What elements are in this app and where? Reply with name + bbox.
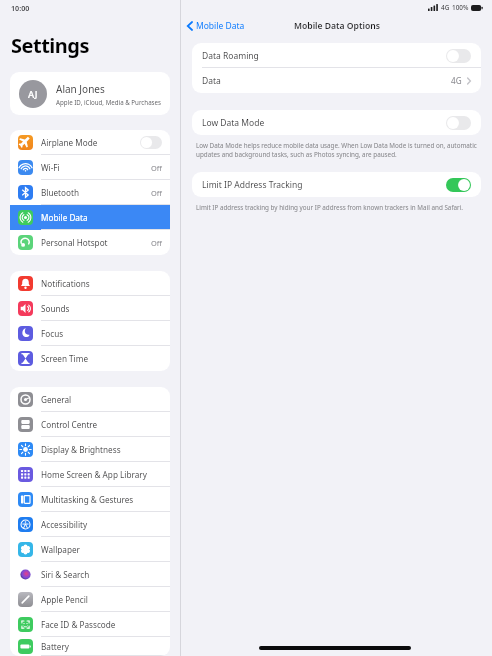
staticText: Personal Hotspot bbox=[41, 237, 151, 248]
button[interactable]: Home Screen & App Library bbox=[10, 462, 170, 487]
staticText: Limit IP address tracking by hiding your… bbox=[196, 203, 463, 212]
button[interactable]: Accessibility bbox=[10, 512, 170, 537]
staticText: Siri & Search bbox=[41, 569, 162, 580]
button[interactable]: Apple Pencil bbox=[10, 587, 170, 612]
staticText: Data Roaming bbox=[202, 50, 446, 62]
button[interactable]: Control Centre bbox=[10, 412, 170, 437]
staticText: AJ bbox=[28, 88, 38, 101]
staticText: 100% bbox=[452, 3, 469, 12]
button[interactable]: AJ bbox=[10, 72, 170, 115]
staticText: Alan Jones bbox=[56, 82, 105, 96]
staticText: Home Screen & App Library bbox=[41, 469, 162, 480]
button[interactable]: Bluetooth bbox=[10, 180, 170, 205]
button[interactable]: Toggle off bbox=[446, 116, 471, 130]
staticText: 4G bbox=[451, 75, 462, 86]
staticText: Low Data Mode helps reduce mobile data u… bbox=[196, 141, 477, 159]
button[interactable]: Limit IP Address Tracking bbox=[192, 172, 481, 197]
button[interactable]: Toggle on bbox=[446, 178, 471, 192]
staticText: Apple Pencil bbox=[41, 594, 162, 605]
button[interactable]: Wi-Fi bbox=[10, 155, 170, 180]
button[interactable]: Airplane Mode bbox=[10, 130, 170, 155]
staticText: 10:00 bbox=[11, 3, 30, 13]
button[interactable]: Screen Time bbox=[10, 346, 170, 371]
staticText: Off bbox=[151, 238, 162, 248]
button[interactable]: Toggle off bbox=[140, 136, 162, 149]
staticText: Focus bbox=[41, 328, 162, 339]
button[interactable]: Sounds bbox=[10, 296, 170, 321]
button[interactable]: General bbox=[10, 387, 170, 412]
staticText: Notifications bbox=[41, 278, 162, 289]
button[interactable]: Focus bbox=[10, 321, 170, 346]
staticText: Airplane Mode bbox=[41, 137, 140, 148]
staticText: Wallpaper bbox=[41, 544, 162, 555]
staticText: Screen Time bbox=[41, 353, 162, 364]
staticText: Limit IP Address Tracking bbox=[202, 179, 446, 191]
staticText: Apple ID, iCloud, Media & Purchases bbox=[56, 98, 162, 106]
staticText: Accessibility bbox=[41, 519, 162, 530]
button[interactable]: Notifications bbox=[10, 271, 170, 296]
staticText: Bluetooth bbox=[41, 187, 151, 198]
button[interactable]: Battery bbox=[10, 637, 170, 656]
staticText: Off bbox=[151, 188, 162, 198]
staticText: Low Data Mode bbox=[202, 117, 446, 129]
button[interactable]: Low Data Mode bbox=[192, 110, 481, 135]
button[interactable]: Mobile Data bbox=[181, 17, 251, 35]
staticText: Display & Brightness bbox=[41, 444, 162, 455]
staticText: Mobile Data bbox=[41, 212, 162, 223]
staticText: 4G bbox=[441, 3, 450, 12]
button[interactable]: Data bbox=[192, 68, 481, 93]
button[interactable]: Multitasking & Gestures bbox=[10, 487, 170, 512]
staticText: General bbox=[41, 394, 162, 405]
button[interactable]: Siri & Search bbox=[10, 562, 170, 587]
button[interactable]: Toggle off bbox=[446, 49, 471, 63]
staticText: Off bbox=[151, 163, 162, 173]
staticText: Multitasking & Gestures bbox=[41, 494, 162, 505]
button[interactable]: Mobile Data bbox=[10, 205, 170, 230]
staticText: Sounds bbox=[41, 303, 162, 314]
staticText: Mobile Data Options bbox=[294, 20, 380, 32]
button[interactable]: Face ID & Passcode bbox=[10, 612, 170, 637]
staticText: Data bbox=[202, 75, 451, 87]
staticText: Settings bbox=[11, 32, 89, 59]
staticText: Mobile Data bbox=[196, 20, 245, 32]
button[interactable]: Personal Hotspot bbox=[10, 230, 170, 255]
staticText: Battery bbox=[41, 641, 162, 652]
button[interactable]: Display & Brightness bbox=[10, 437, 170, 462]
staticText: Control Centre bbox=[41, 419, 162, 430]
button[interactable]: Wallpaper bbox=[10, 537, 170, 562]
staticText: Wi-Fi bbox=[41, 162, 151, 173]
staticText: Face ID & Passcode bbox=[41, 619, 162, 630]
button[interactable]: Data Roaming bbox=[192, 43, 481, 68]
